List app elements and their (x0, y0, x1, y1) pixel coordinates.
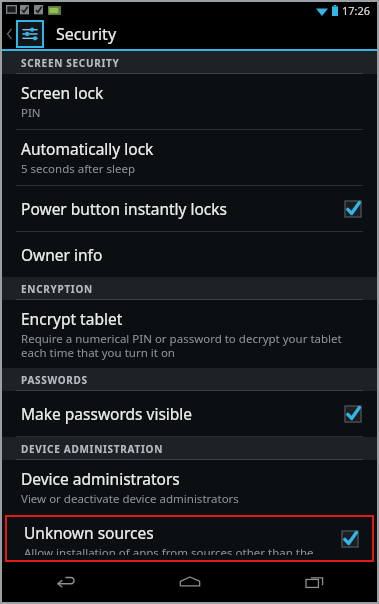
other: Enabled (343, 404, 363, 424)
button[interactable]: Navigate up (2, 19, 16, 49)
button[interactable]: Back (2, 562, 127, 602)
staticText: Power button instantly locks (21, 198, 228, 219)
staticText: 5 seconds after sleep (21, 161, 136, 177)
staticText: DEVICE ADMINISTRATION (21, 442, 163, 456)
button[interactable]: Device administrators (2, 460, 377, 515)
staticText: ENCRYPTION (21, 282, 93, 296)
button[interactable]: Screen lock (2, 74, 377, 129)
button[interactable]: Power button instantly locks (2, 186, 377, 231)
button[interactable]: Encrypt tablet (2, 300, 377, 368)
button[interactable]: Make passwords visible (2, 391, 377, 436)
button[interactable]: Recent apps (252, 562, 377, 602)
staticText: 17:26 (342, 3, 371, 18)
staticText: Automatically lock (21, 138, 154, 159)
other: Enabled (343, 199, 363, 219)
other: Enabled (340, 529, 360, 549)
staticText: SCREEN SECURITY (21, 56, 120, 70)
staticText: Make passwords visible (21, 403, 193, 424)
button[interactable]: Unknown sources (5, 515, 374, 562)
staticText: View or deactivate device administrators (21, 491, 239, 507)
button[interactable]: Owner info (2, 232, 377, 277)
button[interactable]: Home (127, 562, 252, 602)
staticText: Owner info (21, 244, 103, 265)
staticText: PIN (21, 105, 41, 121)
staticText: Security (56, 23, 117, 45)
staticText: PASSWORDS (21, 373, 88, 387)
staticText: Device administrators (21, 468, 180, 489)
staticText: Screen lock (21, 82, 104, 103)
staticText: Allow installation of apps from sources … (24, 545, 332, 555)
button[interactable]: Automatically lock (2, 130, 377, 185)
button[interactable]: Settings (16, 20, 44, 48)
staticText: Encrypt tablet (21, 308, 123, 329)
staticText: Unknown sources (24, 522, 154, 543)
staticText: Require a numerical PIN or password to d… (21, 331, 363, 360)
